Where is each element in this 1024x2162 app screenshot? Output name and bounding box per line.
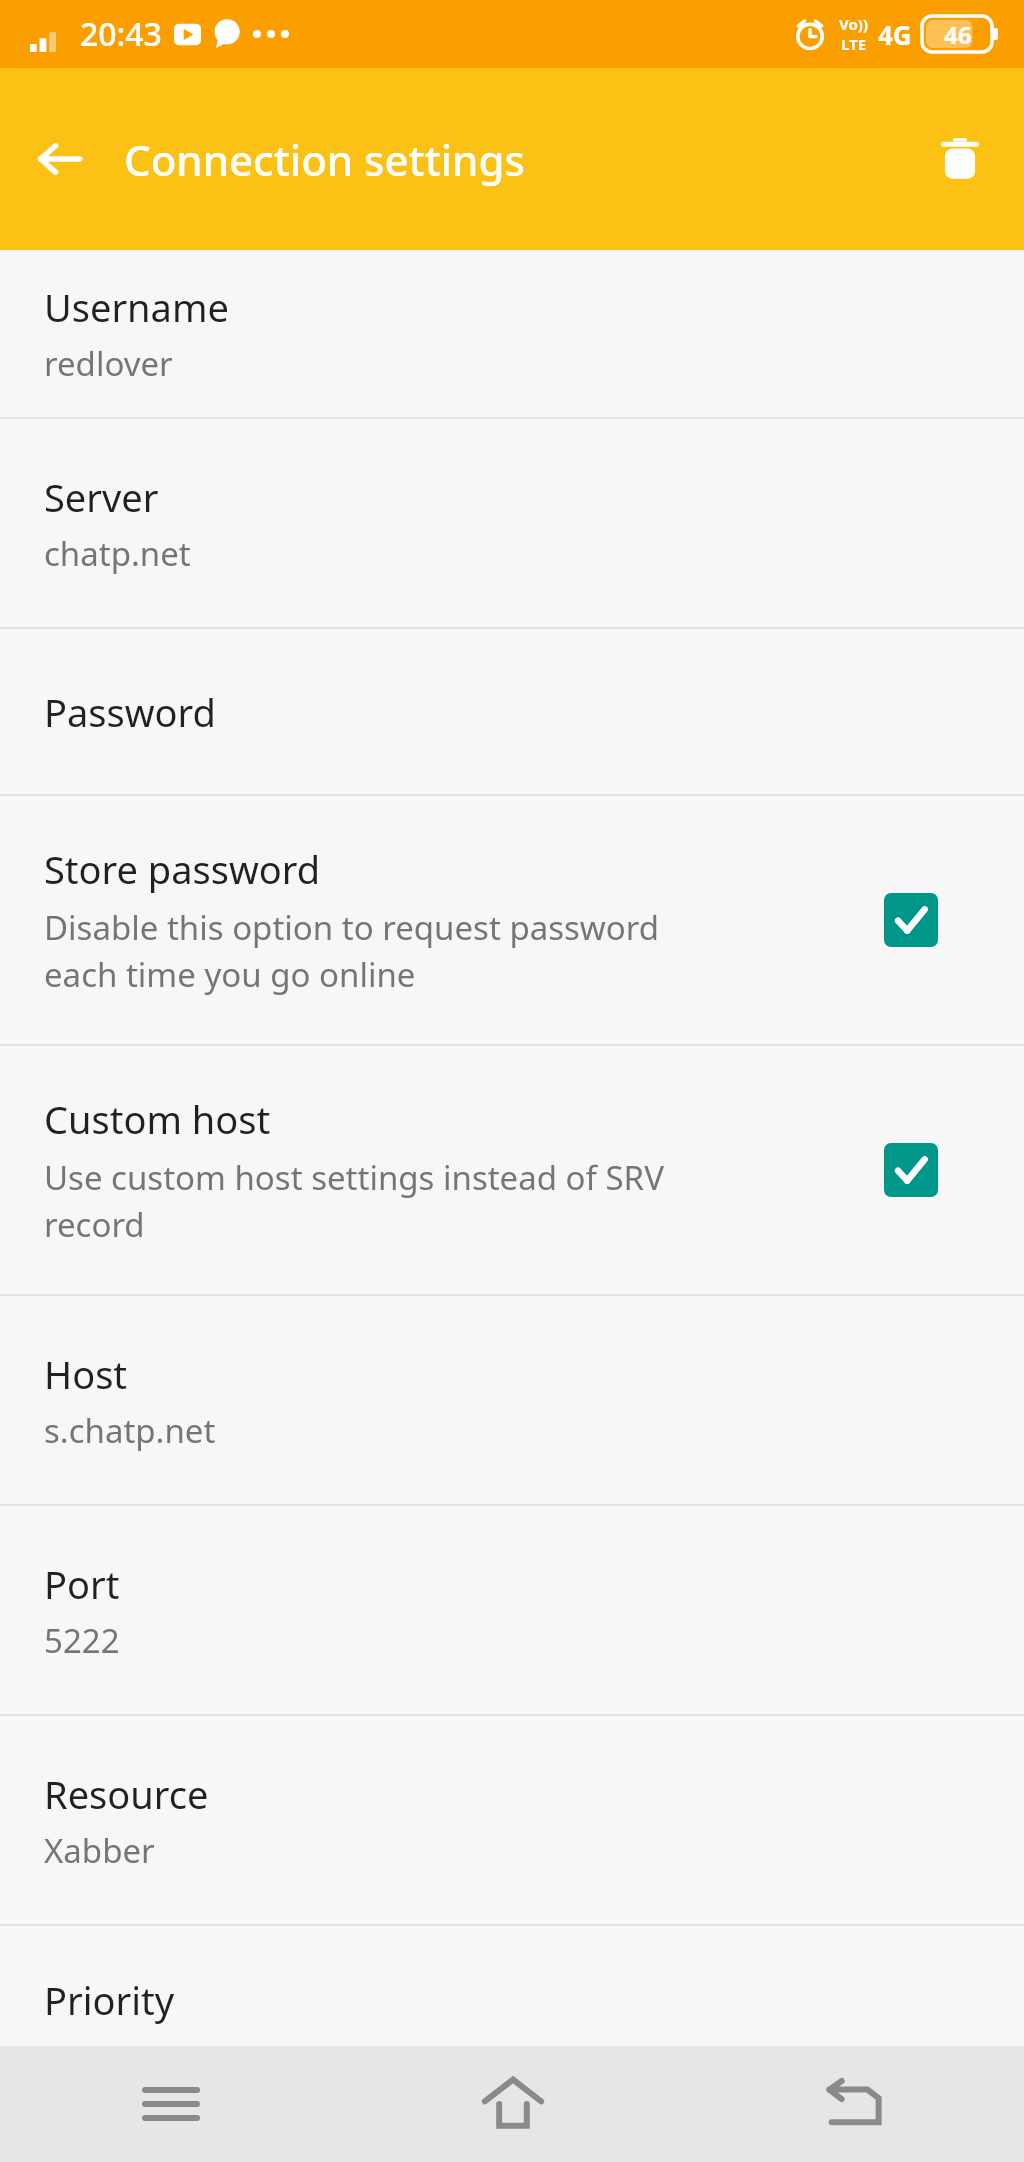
- button[interactable]: Store password: [0, 796, 1024, 1044]
- staticText: Disable this option to request password …: [44, 905, 659, 997]
- staticText: 5222: [44, 1618, 120, 1663]
- button[interactable]: Port: [0, 1506, 1024, 1714]
- staticText: 46: [944, 18, 972, 51]
- staticText: Port: [44, 1558, 120, 1610]
- button[interactable]: Back: [24, 123, 96, 195]
- staticText: redlover: [44, 341, 173, 386]
- staticText: Store password: [44, 843, 321, 895]
- staticText: Xabber: [44, 1828, 155, 1873]
- staticText: Vo)): [839, 14, 868, 34]
- staticText: Custom host: [44, 1093, 271, 1145]
- button[interactable]: Server: [0, 419, 1024, 627]
- staticText: Server: [44, 471, 159, 523]
- staticText: Password: [44, 686, 216, 738]
- button[interactable]: Priority: [0, 1926, 1024, 2162]
- staticText: s.chatp.net: [44, 1408, 216, 1453]
- staticText: Username: [44, 281, 229, 333]
- button[interactable]: Password: [0, 629, 1024, 794]
- staticText: Resource: [44, 1768, 209, 1820]
- button[interactable]: Delete: [922, 121, 998, 197]
- staticText: 4G: [878, 17, 912, 52]
- button[interactable]: Resource: [0, 1716, 1024, 1924]
- staticText: 20:43: [80, 12, 162, 56]
- button[interactable]: Home: [342, 2046, 683, 2162]
- staticText: Host: [44, 1348, 128, 1400]
- staticText: Use custom host settings instead of SRV …: [44, 1155, 664, 1247]
- button[interactable]: Recent apps: [0, 2046, 342, 2162]
- button[interactable]: Username: [0, 250, 1024, 417]
- button[interactable]: Host: [0, 1296, 1024, 1504]
- staticText: Priority: [44, 1974, 175, 2026]
- button[interactable]: Back: [683, 2046, 1024, 2162]
- staticText: Connection settings: [124, 131, 922, 188]
- staticText: LTE: [841, 34, 867, 54]
- button[interactable]: Custom host: [0, 1046, 1024, 1294]
- staticText: chatp.net: [44, 531, 191, 576]
